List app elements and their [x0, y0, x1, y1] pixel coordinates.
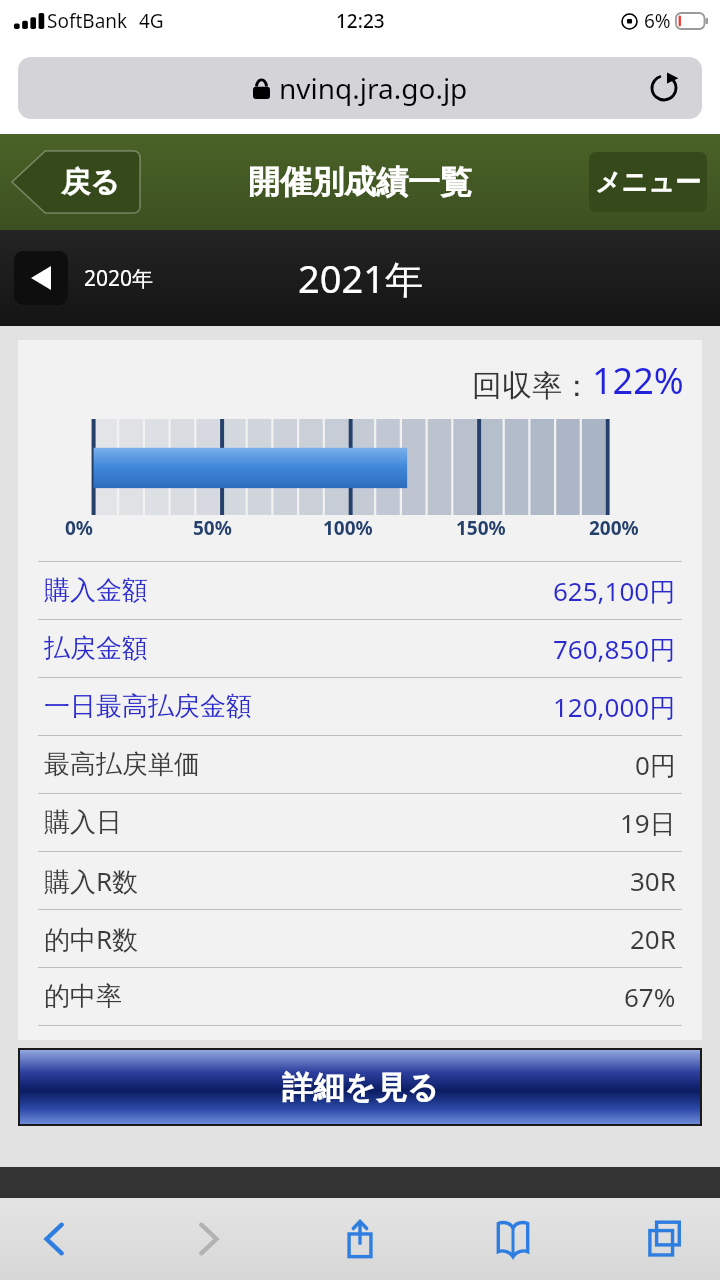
- staticText: 20R: [630, 921, 676, 956]
- staticText: 2020年: [84, 264, 154, 293]
- staticText: メニュー: [595, 166, 701, 199]
- button[interactable]: Tabs: [632, 1206, 698, 1272]
- staticText: 122%: [592, 356, 684, 405]
- staticText: 120,000円: [553, 689, 676, 725]
- staticText: 一日最高払戻金額: [44, 690, 252, 723]
- button[interactable]: 的中率: [38, 968, 682, 1025]
- staticText: 0円: [635, 747, 676, 783]
- staticText: 19日: [620, 805, 676, 841]
- staticText: 購入日: [44, 806, 122, 839]
- button[interactable]: メニュー: [589, 152, 707, 212]
- staticText: 開催別成績一覧: [248, 162, 472, 202]
- button[interactable]: Bookmarks: [480, 1206, 546, 1272]
- staticText: 戻る: [61, 164, 120, 201]
- button[interactable]: 最高払戻単価: [38, 736, 682, 793]
- button[interactable]: 購入日: [38, 794, 682, 851]
- button[interactable]: Share: [327, 1206, 393, 1272]
- button[interactable]: 詳細を見る: [20, 1050, 700, 1124]
- button[interactable]: 購入金額: [38, 562, 682, 619]
- button[interactable]: Reload: [642, 66, 686, 110]
- button[interactable]: 戻る: [12, 151, 140, 213]
- button[interactable]: 一日最高払戻金額: [38, 678, 682, 735]
- staticText: 760,850円: [553, 631, 676, 667]
- staticText: 詳細を見る: [282, 1068, 439, 1107]
- button[interactable]: Forward: [175, 1206, 241, 1272]
- staticText: nvinq.jra.go.jp: [279, 69, 468, 107]
- button[interactable]: nvinq.jra.go.jp: [18, 57, 702, 119]
- staticText: 67%: [624, 979, 676, 1014]
- staticText: 回収率：: [472, 367, 592, 405]
- staticText: 的中率: [44, 980, 122, 1013]
- staticText: 100%: [323, 515, 373, 541]
- staticText: 6%: [644, 8, 671, 34]
- staticText: 30R: [630, 863, 676, 898]
- other: Previous year: [14, 251, 68, 305]
- staticText: 625,100円: [553, 573, 676, 609]
- staticText: SoftBank: [47, 8, 128, 34]
- staticText: 0%: [65, 515, 94, 541]
- staticText: 購入金額: [44, 574, 148, 607]
- staticText: 200%: [589, 515, 639, 541]
- staticText: 4G: [139, 8, 164, 34]
- button[interactable]: 的中R数: [38, 910, 682, 967]
- staticText: 的中R数: [44, 921, 139, 957]
- staticText: 2021年: [298, 252, 423, 304]
- staticText: 最高払戻単価: [44, 748, 200, 781]
- staticText: 払戻金額: [44, 632, 148, 665]
- button[interactable]: Back: [22, 1206, 88, 1272]
- staticText: 50%: [193, 515, 232, 541]
- staticText: 購入R数: [44, 863, 139, 899]
- staticText: 150%: [456, 515, 506, 541]
- staticText: 12:23: [336, 8, 385, 34]
- button[interactable]: 購入R数: [38, 852, 682, 909]
- button[interactable]: 払戻金額: [38, 620, 682, 677]
- button[interactable]: Previous year: [14, 251, 154, 305]
